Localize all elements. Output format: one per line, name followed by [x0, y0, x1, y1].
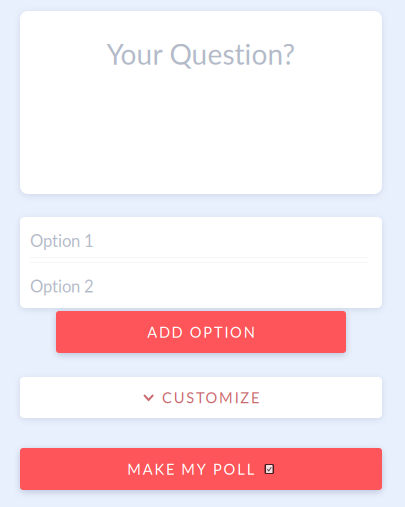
staticText: ADD OPTION — [147, 323, 255, 341]
button[interactable]: ADD OPTION — [56, 311, 346, 353]
staticText: Option 2 — [30, 276, 94, 296]
staticText: MAKE MY POLL — [127, 460, 255, 478]
button[interactable]: CUSTOMIZE — [20, 377, 382, 418]
staticText: CUSTOMIZE — [162, 389, 259, 406]
staticText: Your Question? — [106, 37, 295, 71]
staticText: Option 1 — [30, 230, 94, 250]
button[interactable]: MAKE MY POLL — [20, 448, 382, 490]
